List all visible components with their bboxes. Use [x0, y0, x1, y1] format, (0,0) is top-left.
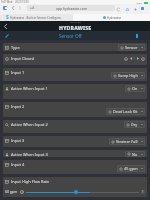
button[interactable]: S — [6, 14, 73, 21]
button[interactable]: Input 2 — [3, 102, 147, 117]
button[interactable]: Hydrawise — [103, 14, 122, 21]
staticText: Hydrawise — [107, 16, 122, 20]
staticText: Active When Input 2 — [11, 122, 48, 127]
staticText: + — [142, 57, 144, 61]
staticText: HUNTER — [70, 21, 82, 24]
staticText: app.hydrawise.com — [56, 6, 87, 11]
staticText: ? — [142, 190, 144, 194]
button[interactable]: Back — [11, 5, 15, 11]
staticText: 60 gpm — [5, 189, 18, 194]
button[interactable]: Show tabs — [141, 7, 144, 10]
staticText: Dry — [131, 122, 138, 127]
button[interactable]: On — [127, 85, 143, 92]
button[interactable]: Active When Input 3 — [3, 150, 147, 157]
button[interactable]: Forward — [18, 5, 22, 11]
button[interactable]: Type — [3, 43, 147, 51]
button[interactable]: Input 1 — [3, 68, 147, 81]
staticText: Sensor — [125, 45, 138, 50]
staticText: 9:41 Wed — [1, 0, 13, 4]
staticText: No — [132, 152, 138, 157]
staticText: On — [132, 86, 138, 91]
staticText: Input Closed — [11, 56, 35, 61]
button[interactable]: Input 3 — [3, 136, 147, 147]
staticText: Input 3 — [11, 138, 25, 143]
staticText: Active When Input 3 — [11, 152, 48, 157]
staticText: Input 4 — [11, 162, 25, 167]
staticText: 2022/10/20 — [15, 0, 29, 4]
staticText: Sump High — [118, 73, 138, 78]
button[interactable]: 45 gpm — [119, 165, 143, 172]
button[interactable]: Sump High — [113, 72, 143, 79]
button[interactable]: Downloads — [125, 7, 129, 11]
staticText: Input 1 — [11, 70, 25, 75]
button[interactable]: Edit — [4, 33, 9, 38]
staticText: Hydrawise - Built-in Sensor Configura — [10, 16, 61, 20]
staticText: Input 2 — [11, 104, 25, 109]
button[interactable]: No — [127, 151, 143, 157]
button[interactable]: Reload — [116, 7, 120, 11]
button[interactable]: Sensor — [120, 44, 143, 51]
button[interactable]: Input Closed — [3, 54, 147, 65]
button[interactable]: Active When Input 2 — [3, 120, 147, 133]
button[interactable]: app.hydrawise.com — [27, 5, 115, 11]
button[interactable]: Increase — [141, 57, 145, 61]
staticText: Sensor Off — [59, 33, 82, 39]
button[interactable]: Sidebar — [3, 6, 7, 10]
staticText: Strainer Full — [116, 139, 138, 144]
staticText: 100% — [136, 1, 143, 4]
staticText: Dead Leak Kit — [113, 109, 138, 114]
staticText: Active When Input 1 — [11, 86, 48, 91]
button[interactable]: Flow rate — [74, 190, 78, 194]
staticText: 45 gpm — [124, 166, 138, 171]
staticText: 1 — [133, 56, 136, 61]
button[interactable]: Back — [2, 23, 8, 29]
staticText: Type — [11, 45, 20, 50]
button[interactable]: Decrease — [124, 57, 128, 61]
button[interactable]: Input 4 — [3, 160, 147, 174]
staticText: ａA — [29, 6, 35, 10]
staticText: − — [125, 57, 127, 61]
button[interactable]: Dead Leak Kit — [108, 108, 143, 115]
staticText: HYDRAWISE — [59, 24, 92, 31]
button[interactable]: Strainer Full — [111, 138, 143, 145]
button[interactable]: Active When Input 1 — [3, 84, 147, 99]
staticText: S — [6, 14, 9, 21]
button[interactable]: Input High Flow Rate — [5, 179, 50, 184]
button[interactable]: New tab — [133, 7, 137, 11]
button[interactable]: Help — [141, 190, 145, 194]
staticText: Input High Flow Rate — [11, 179, 50, 184]
button[interactable]: Dry — [126, 121, 143, 128]
